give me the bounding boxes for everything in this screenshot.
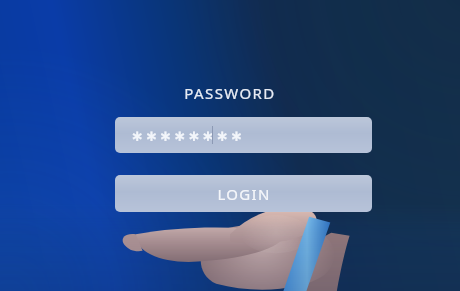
button[interactable]: LOGIN <box>115 175 372 212</box>
button[interactable]: ∗∗∗∗∗∗∗∗ <box>115 117 372 153</box>
staticText: ∗∗∗∗∗∗∗∗ <box>131 127 245 144</box>
staticText: LOGIN <box>217 184 271 204</box>
staticText: PASSWORD <box>184 83 276 103</box>
other: Open hand illustration <box>130 225 340 291</box>
